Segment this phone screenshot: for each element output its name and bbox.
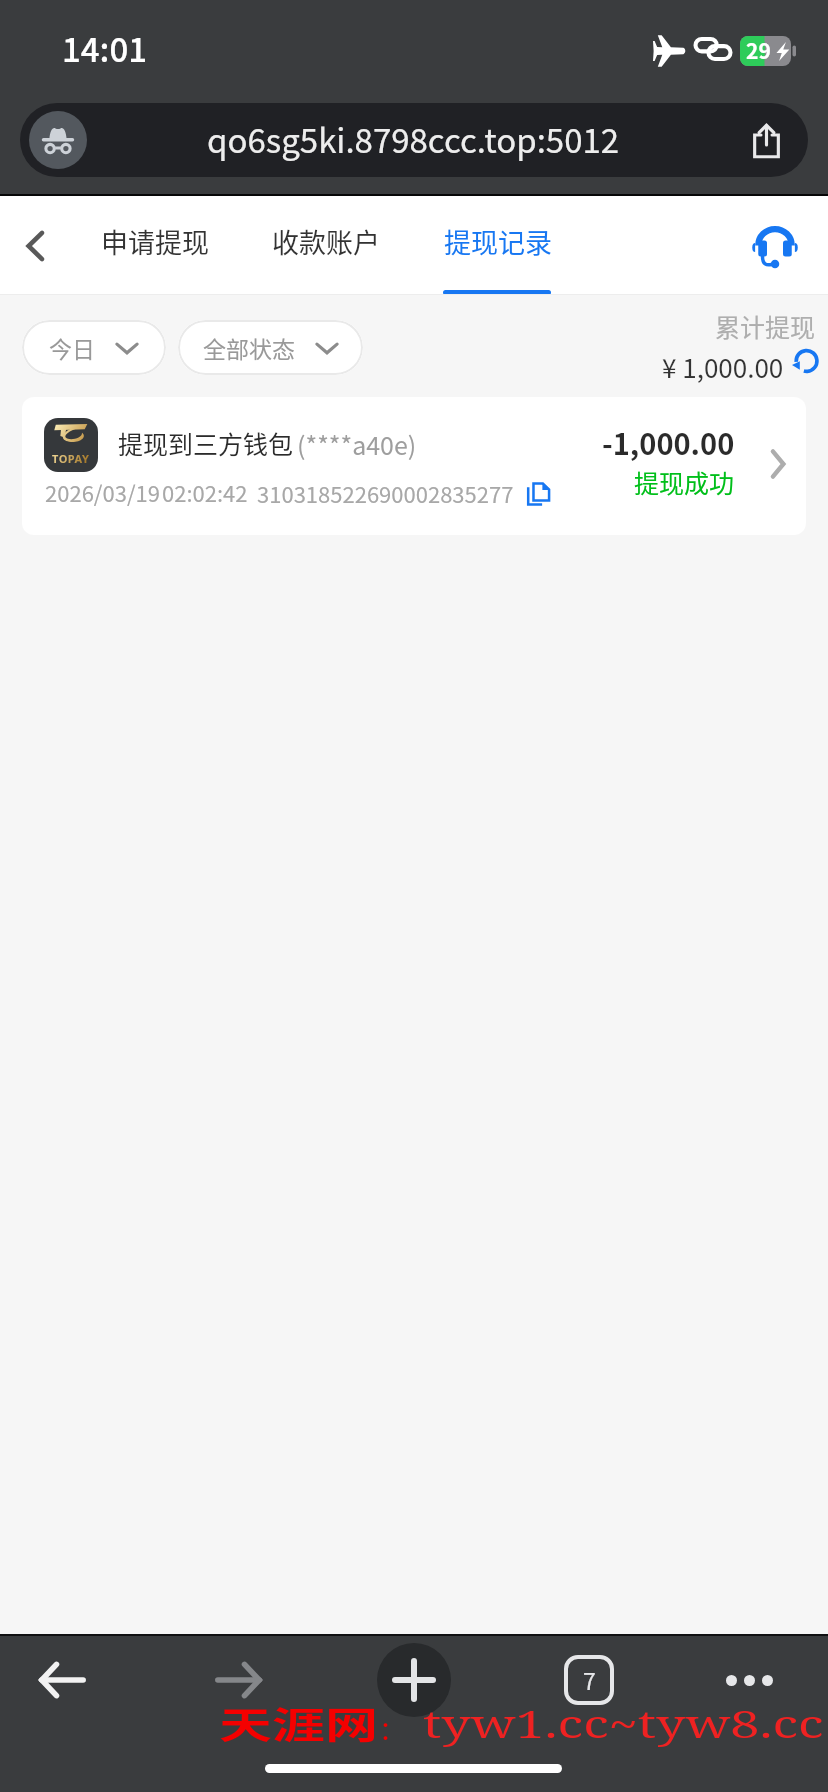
staticText: 累计提现 — [715, 308, 816, 344]
staticText: 提现到三方钱包 — [118, 425, 294, 461]
button[interactable]: More — [715, 1646, 783, 1714]
staticText: 7 — [583, 1663, 596, 1696]
staticText: ： — [379, 1710, 406, 1748]
button[interactable]: Share — [740, 114, 792, 166]
button[interactable]: Forward — [205, 1646, 273, 1714]
staticText: 29 — [746, 35, 771, 65]
button[interactable]: 收款账户 — [272, 222, 380, 261]
staticText: 14:01 — [62, 24, 148, 72]
button[interactable]: 全部状态 — [178, 320, 363, 375]
staticText: 2026/03/19 — [45, 476, 160, 508]
button[interactable]: 提现记录 — [444, 222, 552, 261]
staticText: ¥ 1,000.00 — [662, 348, 784, 386]
button[interactable]: Tabs — [555, 1646, 623, 1714]
staticText: tyw1.cc~tyw8.cc — [423, 1698, 824, 1749]
button[interactable]: Refresh — [789, 346, 821, 378]
button[interactable]: TOPAY — [22, 397, 806, 535]
staticText: 全部状态 — [203, 331, 295, 364]
staticText: -1,000.00 — [602, 421, 735, 463]
staticText: 申请提现 — [101, 222, 209, 261]
staticText: TOPAY — [52, 451, 90, 466]
staticText: qo6sg5ki.8798ccc.top:5012 — [207, 115, 620, 163]
button[interactable]: New tab — [377, 1643, 451, 1717]
staticText: 提现记录 — [444, 222, 552, 261]
staticText: 02:02:42 — [162, 476, 248, 508]
button[interactable]: Back — [28, 1646, 96, 1714]
staticText: 310318522690002835277 — [257, 477, 514, 509]
staticText: 提现成功 — [634, 464, 735, 500]
button[interactable]: Back — [4, 215, 66, 277]
button[interactable]: 今日 — [22, 320, 166, 375]
button[interactable]: Copy — [523, 478, 555, 510]
button[interactable]: Private browsing — [20, 103, 808, 177]
staticText: 今日 — [49, 331, 95, 364]
staticText: (****a40e) — [297, 426, 417, 462]
staticText: 收款账户 — [272, 222, 380, 261]
button[interactable]: Customer service — [744, 214, 806, 276]
staticText: 天涯网 — [219, 1696, 378, 1750]
button[interactable]: Private browsing — [29, 111, 87, 169]
button[interactable]: 申请提现 — [101, 222, 209, 261]
